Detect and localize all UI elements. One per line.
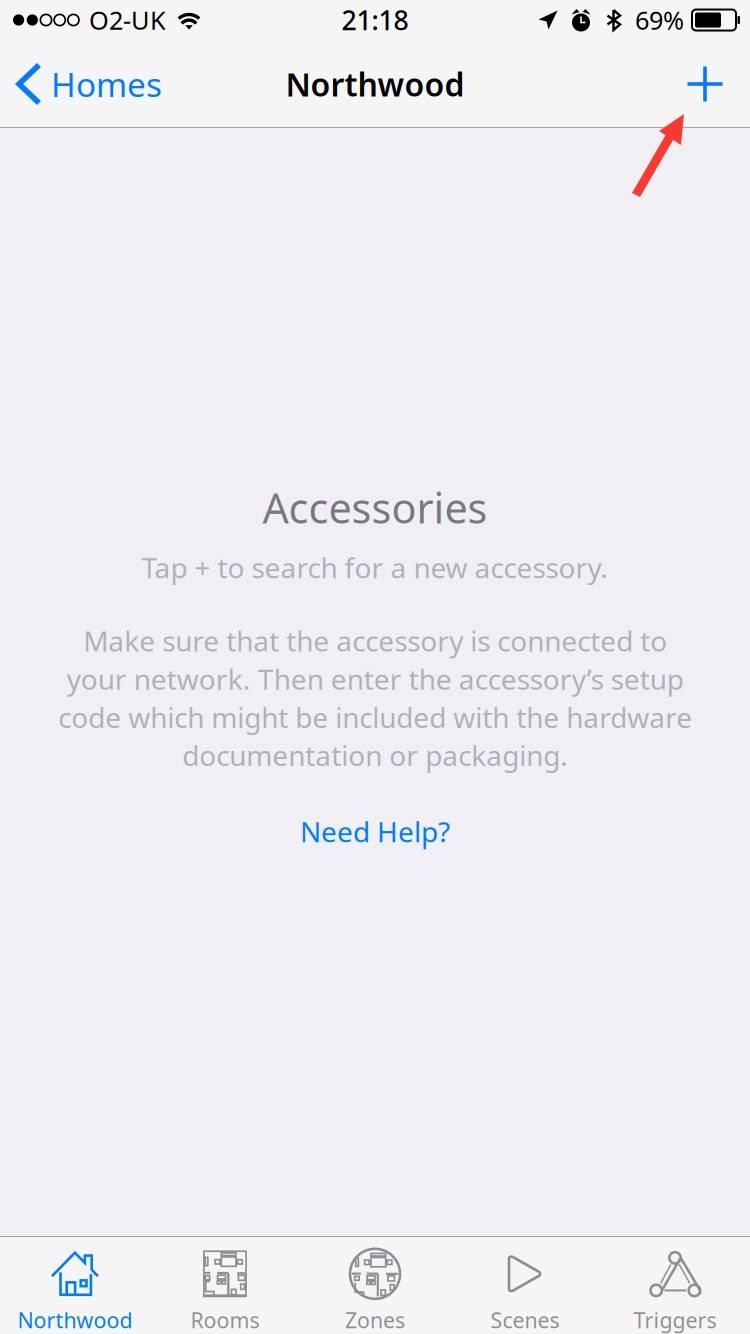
button[interactable]: Add Accessory: [673, 54, 750, 114]
button[interactable]: Need Help?: [280, 805, 470, 858]
staticText: Northwood: [285, 63, 464, 105]
staticText: O2-UK: [89, 3, 166, 37]
button[interactable]: Triggers: [600, 1236, 750, 1334]
staticText: Scenes: [490, 1306, 559, 1334]
button[interactable]: Zones: [300, 1236, 450, 1334]
staticText: Northwood: [17, 1306, 132, 1334]
staticText: Accessories: [262, 480, 487, 535]
staticText: 21:18: [341, 2, 408, 38]
staticText: Tap + to search for a new accessory.: [141, 549, 608, 586]
button[interactable]: Rooms: [150, 1236, 300, 1334]
staticText: Rooms: [190, 1306, 259, 1334]
staticText: Make sure that the accessory is connecte…: [58, 622, 692, 774]
button[interactable]: Homes: [0, 54, 176, 114]
staticText: Triggers: [633, 1306, 716, 1334]
button[interactable]: Northwood: [0, 1236, 150, 1334]
button[interactable]: Scenes: [450, 1236, 600, 1334]
staticText: Need Help?: [300, 813, 450, 850]
staticText: Zones: [345, 1306, 405, 1334]
staticText: Homes: [51, 62, 162, 106]
staticText: 69%: [635, 3, 684, 37]
